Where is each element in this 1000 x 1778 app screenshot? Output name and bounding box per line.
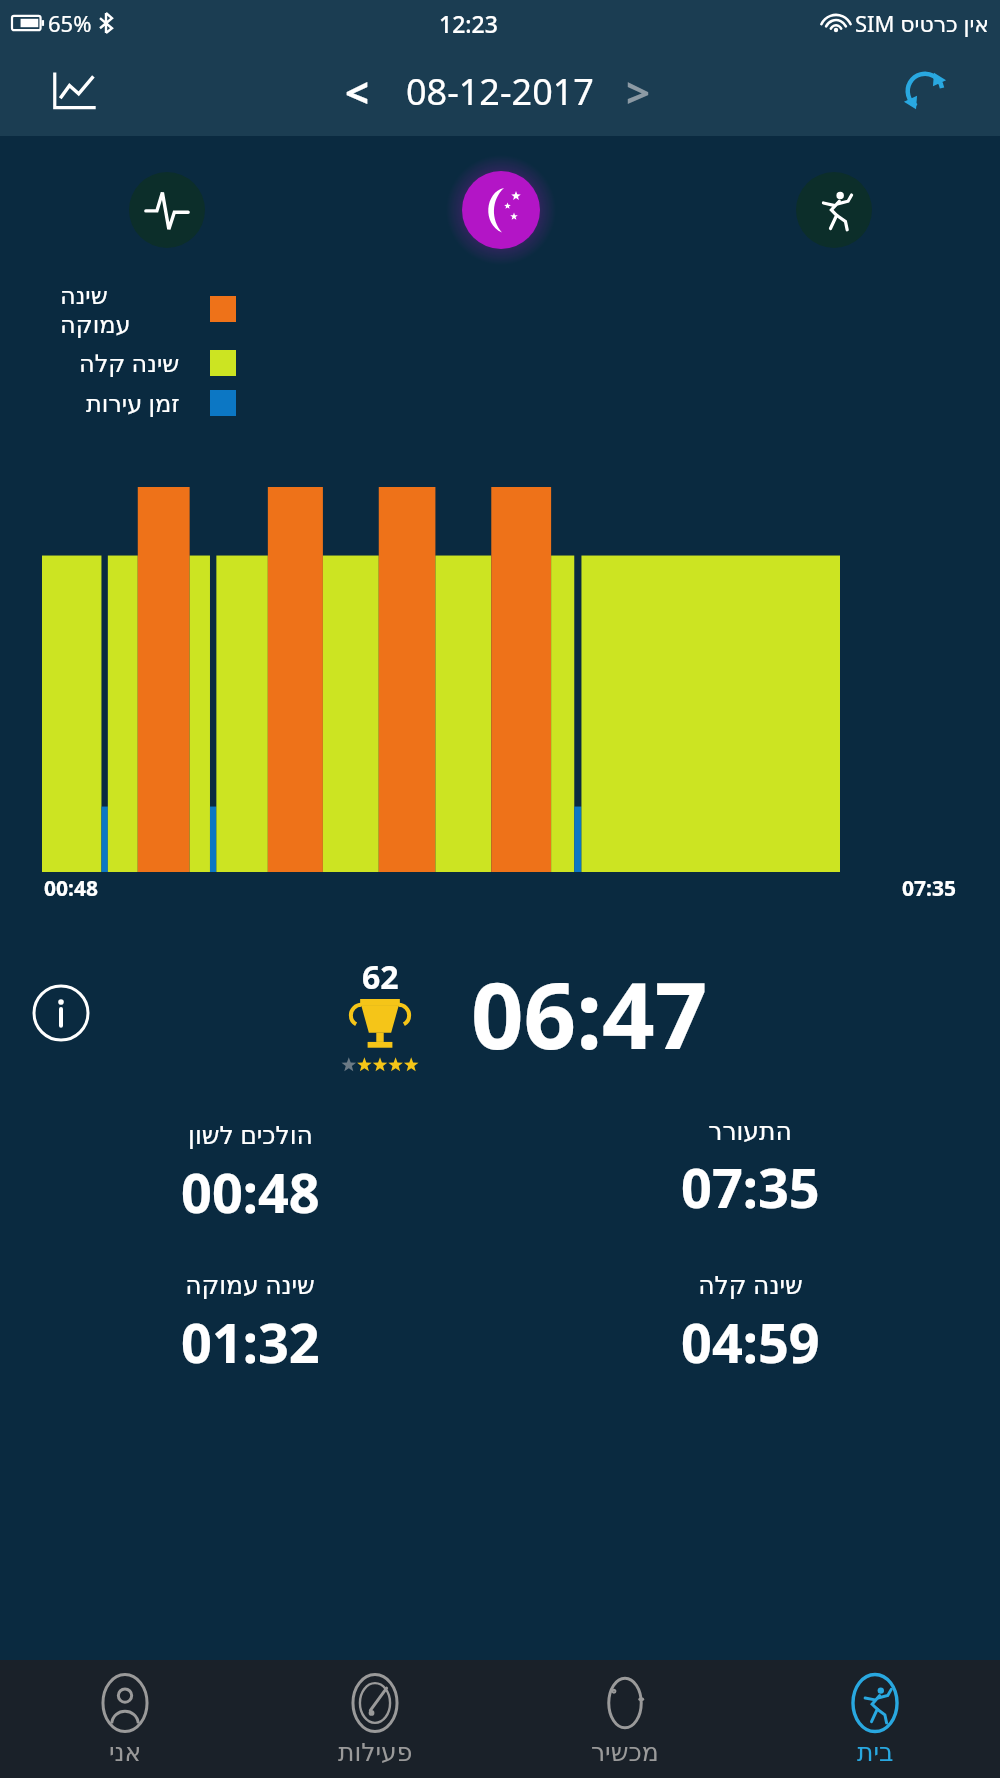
button[interactable]: שינה קלה	[500, 1267, 1000, 1379]
button[interactable]: Info	[32, 984, 90, 1042]
staticText: שינה קלה	[698, 1267, 803, 1301]
staticText: 07:35	[902, 874, 956, 903]
button[interactable]: שינה עמוקה	[0, 1267, 500, 1379]
button[interactable]: התעורר	[500, 1117, 1000, 1224]
button[interactable]: Sleep	[462, 171, 540, 249]
button[interactable]: הולכים לשון	[0, 1117, 500, 1229]
staticText: >	[626, 63, 661, 120]
staticText: SIM אין כרטיס	[855, 8, 990, 38]
staticText: מכשיר	[591, 1738, 659, 1767]
button[interactable]: בית	[750, 1660, 1000, 1778]
staticText: 01:32	[181, 1305, 320, 1379]
button[interactable]: Heart rate	[129, 172, 205, 248]
button[interactable]: מכשיר	[500, 1660, 750, 1778]
staticText: שינה עמוקה	[185, 1267, 315, 1301]
staticText: 08-12-2017	[406, 67, 594, 116]
button[interactable]: אני	[0, 1660, 250, 1778]
button[interactable]: פעילות	[250, 1660, 500, 1778]
staticText: פעילות	[338, 1738, 413, 1767]
button[interactable]: Previous day	[322, 56, 392, 126]
staticText: 12:23	[439, 8, 498, 39]
staticText: 04:59	[681, 1305, 820, 1379]
staticText: שינה קלה	[79, 346, 180, 379]
staticText: אני	[109, 1738, 142, 1767]
staticText: התעורר	[708, 1117, 792, 1146]
staticText: זמן עירות	[86, 386, 180, 419]
button[interactable]: Next day	[608, 56, 678, 126]
staticText: 00:48	[44, 874, 98, 903]
staticText: <	[345, 63, 370, 120]
staticText: 00:48	[181, 1155, 320, 1229]
button[interactable]: Activity	[796, 172, 872, 248]
staticText: בית	[857, 1738, 894, 1767]
button[interactable]: Statistics	[0, 46, 150, 136]
staticText: 62	[362, 955, 399, 999]
button[interactable]: Sync	[850, 46, 1000, 136]
staticText: הולכים לשון	[188, 1117, 313, 1151]
staticText: 65%	[48, 8, 92, 38]
staticText: שינה עמוקה	[60, 278, 180, 339]
staticText: 06:47	[471, 951, 708, 1076]
staticText: 07:35	[681, 1150, 820, 1224]
